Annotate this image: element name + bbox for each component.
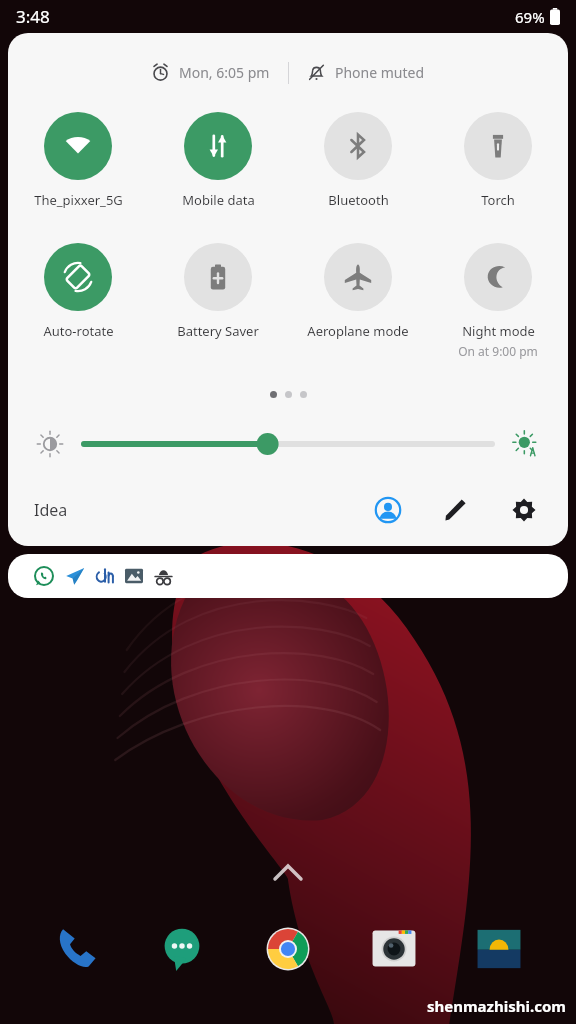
button[interactable]: Aeroplane mode: [288, 241, 428, 342]
button[interactable]: Mobile data: [148, 110, 288, 211]
staticText: Mobile data: [182, 191, 255, 209]
button[interactable]: [84, 431, 492, 457]
staticText: Auto-rotate: [43, 322, 114, 340]
button[interactable]: [8, 554, 568, 598]
staticText: Phone muted: [335, 63, 425, 82]
staticText: Bluetooth: [328, 191, 389, 209]
button[interactable]: Edit: [434, 488, 478, 532]
button[interactable]: Battery Saver: [148, 241, 288, 342]
button[interactable]: Camera: [365, 920, 423, 978]
button[interactable]: Settings: [502, 488, 546, 532]
staticText: Aeroplane mode: [307, 322, 409, 340]
button[interactable]: The_pixxer_5G: [8, 110, 148, 211]
button[interactable]: Night mode: [428, 241, 568, 361]
staticText: Torch: [481, 191, 515, 209]
staticText: Night mode: [462, 322, 535, 340]
button[interactable]: Auto-rotate: [8, 241, 148, 342]
staticText: 69%: [515, 7, 545, 27]
button[interactable]: Auto brightness: [504, 422, 548, 466]
button[interactable]: Messages: [153, 920, 211, 978]
button[interactable]: Phone muted: [303, 59, 429, 86]
staticText: The_pixxer_5G: [34, 191, 123, 209]
button[interactable]: User: [366, 488, 410, 532]
staticText: Mon, 6:05 pm: [179, 63, 270, 82]
staticText: Idea: [34, 499, 68, 521]
staticText: Battery Saver: [177, 322, 259, 340]
staticText: 3:48: [16, 5, 50, 28]
button[interactable]: Brightness: [28, 422, 72, 466]
staticText: shenmazhishi.com: [427, 996, 566, 1016]
button[interactable]: Phone: [48, 920, 106, 978]
button[interactable]: Chrome: [259, 920, 317, 978]
button[interactable]: Bluetooth: [288, 110, 428, 211]
button[interactable]: Torch: [428, 110, 568, 211]
staticText: On at 9:00 pm: [458, 343, 538, 359]
button[interactable]: Photos: [470, 920, 528, 978]
button[interactable]: Mon, 6:05 pm: [147, 59, 274, 86]
